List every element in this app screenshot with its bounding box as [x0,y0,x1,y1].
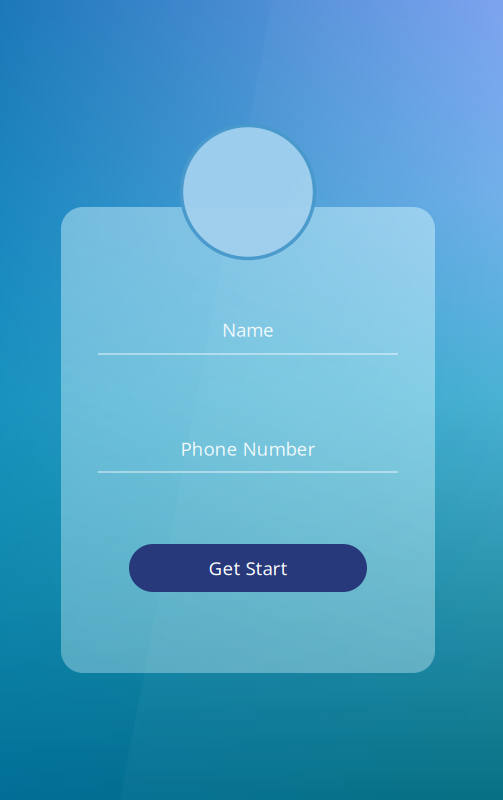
staticText: Name [222,317,274,342]
button[interactable]: Get Start [129,544,367,592]
staticText: Phone Number [180,436,315,461]
button[interactable]: Name [98,306,398,357]
button[interactable]: Phone Number [98,425,398,475]
staticText: Get Start [208,556,287,580]
